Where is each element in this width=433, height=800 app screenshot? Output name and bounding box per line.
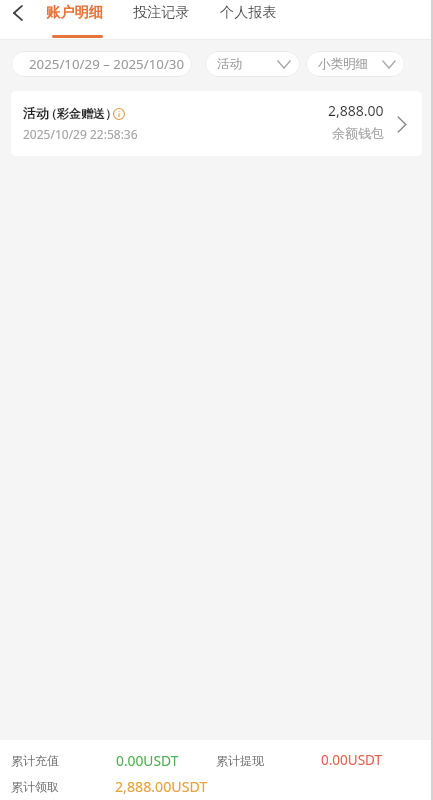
button[interactable]: 账户明细 (43, 0, 105, 40)
staticText: 2025/10/29 22:58:36 (23, 126, 138, 142)
staticText: 2,888.00 (328, 101, 384, 120)
staticText: 累计领取 (11, 779, 59, 794)
staticText: 累计提现 (216, 753, 264, 768)
staticText: 账户明细 (46, 3, 103, 21)
staticText: 小类明细 (318, 56, 379, 72)
button[interactable]: 2025/10/29 – 2025/10/30 (11, 51, 192, 77)
button[interactable]: 活动 (205, 51, 300, 77)
staticText: 余额钱包 (332, 125, 384, 141)
button[interactable]: Back (0, 0, 36, 25)
staticText: 个人报表 (220, 3, 277, 21)
staticText: 活动 (217, 56, 274, 72)
button[interactable]: 小类明细 (306, 51, 405, 77)
staticText: 累计充值 (11, 753, 59, 768)
button[interactable]: Details (391, 113, 413, 135)
staticText: 2025/10/29 – 2025/10/30 (29, 55, 185, 73)
staticText: 2,888.00USDT (115, 777, 208, 796)
staticText: 活动 (23, 105, 49, 121)
staticText: 0.00USDT (321, 751, 383, 769)
staticText: （彩金赠送） (45, 106, 117, 121)
button[interactable]: 投注记录 (130, 0, 192, 40)
staticText: 0.00USDT (116, 751, 179, 770)
button[interactable]: 个人报表 (217, 0, 279, 40)
staticText: 投注记录 (133, 3, 190, 21)
button[interactable]: 活动 (11, 91, 422, 156)
